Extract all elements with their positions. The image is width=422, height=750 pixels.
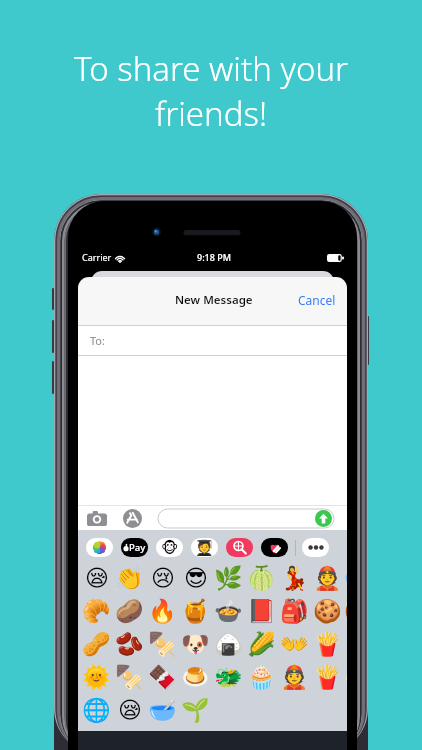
button[interactable] (226, 538, 253, 557)
staticText: 🍢 (148, 631, 177, 658)
button[interactable]: 🍟 (311, 661, 344, 694)
staticText: 🥣 (344, 565, 347, 592)
button[interactable]: 🍯 (179, 595, 212, 628)
staticText: 😪 (85, 565, 109, 592)
button[interactable]: 😪 (113, 694, 146, 727)
staticText: 🍪 (313, 598, 342, 625)
button[interactable] (86, 538, 113, 557)
button[interactable]: Send (158, 509, 334, 528)
staticText: New Message (175, 292, 253, 308)
button[interactable]: 🌿 (212, 562, 245, 595)
button[interactable]: To: (78, 326, 347, 355)
button[interactable]: 🥣 (146, 694, 179, 727)
button[interactable]: 😢 (146, 562, 179, 595)
button[interactable]: 👲 (278, 661, 311, 694)
staticText: 🍮 (181, 664, 210, 691)
staticText: 🧁 (247, 664, 276, 691)
staticText: 🍯 (181, 598, 210, 625)
button[interactable]: 🌐 (80, 694, 113, 727)
button[interactable]: Pay (121, 538, 148, 557)
staticText: 🌐 (82, 697, 111, 724)
staticText: 👐 (280, 631, 309, 658)
button[interactable]: 🍪 (344, 595, 347, 628)
staticText: 🍪 (344, 598, 347, 625)
staticText: 🧑‍🎓 (195, 539, 214, 557)
staticText: 🫘 (115, 631, 144, 658)
button[interactable]: 👐 (278, 628, 311, 661)
staticText: 💃 (280, 565, 309, 592)
button[interactable]: 🍢 (146, 628, 179, 661)
staticText: 🍲 (214, 598, 243, 625)
staticText: 🐲 (214, 664, 243, 691)
button[interactable]: 🥣 (344, 562, 347, 595)
staticText: 🧆 (344, 664, 347, 691)
button[interactable]: 🌞 (80, 661, 113, 694)
button[interactable]: 🍢 (113, 661, 146, 694)
staticText: Cancel (298, 292, 336, 308)
staticText: Pay (129, 541, 146, 554)
button[interactable]: 😎 (179, 562, 212, 595)
button[interactable]: 📕 (245, 595, 278, 628)
button[interactable]: 🥜 (80, 628, 113, 661)
staticText: 👲 (280, 664, 309, 691)
button[interactable]: 🌽 (245, 628, 278, 661)
staticText: 😎 (184, 565, 208, 592)
staticText: 👲 (313, 565, 342, 592)
staticText: 9:18 PM (197, 251, 231, 263)
button[interactable]: 🐵 (156, 538, 183, 557)
button[interactable]: 🥔 (113, 595, 146, 628)
button[interactable]: 🧑‍🎓 (191, 538, 218, 557)
staticText: To: (90, 333, 105, 348)
button[interactable]: 🔥 (146, 595, 179, 628)
staticText: 😪 (118, 697, 142, 724)
button[interactable]: 👲 (311, 562, 344, 595)
button[interactable]: 🍫 (146, 661, 179, 694)
button[interactable] (302, 538, 329, 557)
staticText: 🍢 (115, 664, 144, 691)
button[interactable]: 🍲 (212, 595, 245, 628)
button[interactable]: Send (315, 510, 332, 527)
button[interactable]: 💃 (278, 562, 311, 595)
staticText: 🥣 (148, 697, 177, 724)
staticText: Carrier (82, 251, 112, 263)
staticText: 🥐 (82, 598, 111, 625)
button[interactable]: 🍙 (212, 628, 245, 661)
staticText: 📕 (247, 598, 276, 625)
button[interactable]: 🧆 (344, 661, 347, 694)
button[interactable] (261, 538, 288, 557)
button[interactable]: 🍈 (245, 562, 278, 595)
staticText: 🍈 (247, 565, 276, 592)
staticText: 🍙 (214, 631, 243, 658)
button[interactable]: 🍪 (311, 595, 344, 628)
button[interactable]: New Message (78, 277, 347, 325)
staticText: 🎒 (280, 598, 309, 625)
staticText: 🍟 (313, 631, 342, 658)
staticText: 🥔 (115, 598, 144, 625)
staticText: 👏 (115, 565, 144, 592)
button[interactable]: 🍟 (311, 628, 344, 661)
button[interactable]: 🐲 (212, 661, 245, 694)
button[interactable]: Apps (120, 506, 144, 530)
button[interactable]: 🍮 (179, 661, 212, 694)
button[interactable]: 😪 (80, 562, 113, 595)
button[interactable]: 🧁 (245, 661, 278, 694)
button[interactable]: Camera (85, 506, 109, 530)
button[interactable]: 🫘 (113, 628, 146, 661)
staticText: 🐶 (181, 631, 210, 658)
button[interactable]: Cancel (287, 285, 347, 315)
staticText: 🌿 (214, 565, 243, 592)
staticText: 🌽 (247, 631, 276, 658)
button[interactable]: 👏 (113, 562, 146, 595)
button[interactable]: 🌱 (179, 694, 212, 727)
staticText: 🔥 (148, 598, 177, 625)
staticText: 🥜 (82, 631, 111, 658)
staticText: 🍫 (148, 664, 177, 691)
staticText: 😢 (151, 565, 175, 592)
button[interactable]: 🐶 (179, 628, 212, 661)
button[interactable]: 🥐 (80, 595, 113, 628)
staticText: 🌞 (82, 664, 111, 691)
button[interactable]: 🎒 (278, 595, 311, 628)
staticText: 🌱 (181, 697, 210, 724)
